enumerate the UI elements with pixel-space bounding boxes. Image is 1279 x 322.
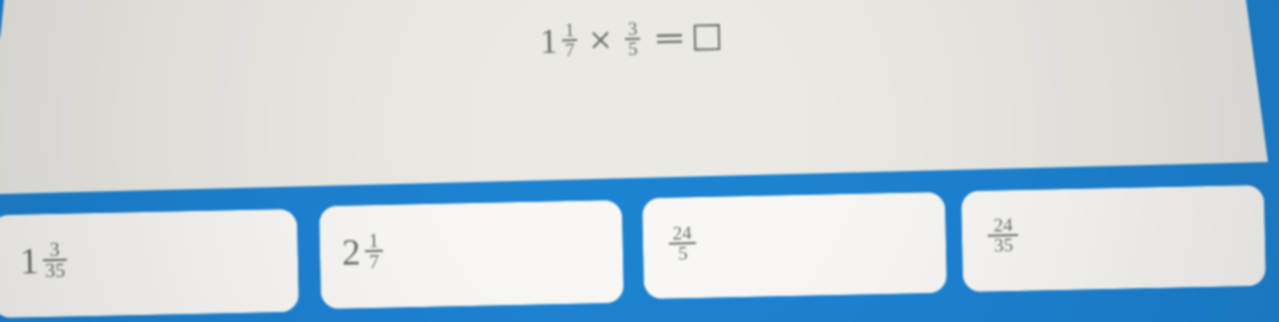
staticText: 24 (993, 214, 1013, 235)
staticText: 1 (540, 21, 558, 61)
staticText: 35 (994, 234, 1013, 255)
staticText: 1 (368, 229, 379, 251)
staticText: 3 (628, 18, 638, 39)
staticText: 7 (369, 250, 379, 272)
staticText: 7 (565, 39, 575, 60)
staticText: 35 (45, 259, 65, 281)
button[interactable]: Answer 24 over 5 (642, 192, 947, 299)
button[interactable]: Answer 2 and 1 over 7 (319, 200, 624, 309)
staticText: 5 (678, 242, 688, 263)
staticText: 2 (341, 231, 361, 273)
staticText: 3 (49, 238, 60, 260)
staticText: 24 (672, 222, 692, 244)
staticText: 1 (19, 240, 39, 282)
button[interactable]: Answer 1 and 3 over 35 (0, 209, 299, 318)
button[interactable]: Answer 24 over 35 (961, 185, 1266, 292)
staticText: 5 (628, 38, 638, 59)
staticText: 1 (565, 19, 575, 40)
